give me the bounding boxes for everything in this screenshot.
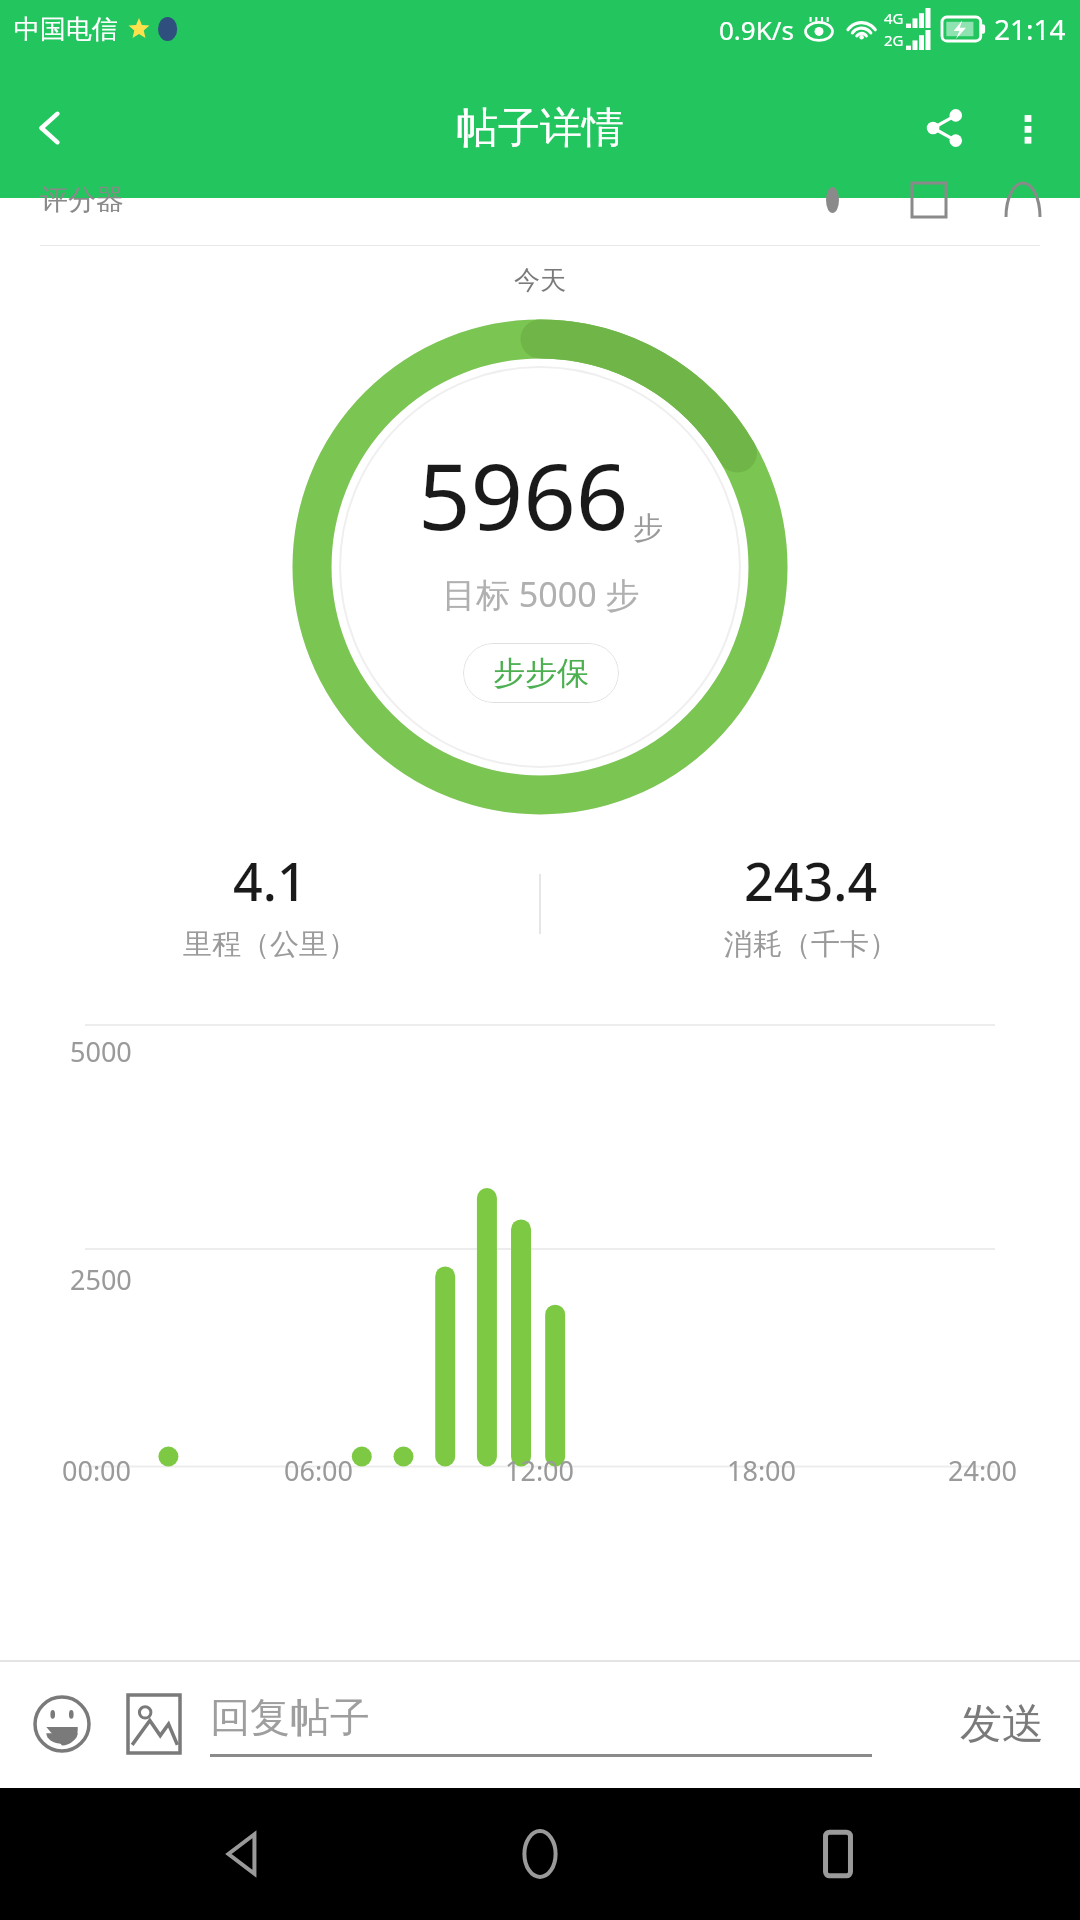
button[interactable]: Recent apps <box>783 1799 893 1909</box>
staticText: 消耗（千卡） <box>724 926 898 963</box>
staticText: 发送 <box>960 1698 1044 1751</box>
staticText: 243.4 <box>744 845 878 916</box>
button[interactable]: Home <box>485 1799 595 1909</box>
button[interactable]: Back <box>14 92 86 164</box>
staticText: 00:00 <box>62 1452 132 1489</box>
staticText: 今天 <box>0 264 1080 297</box>
button[interactable]: Back <box>188 1799 298 1909</box>
staticText: 21:14 <box>994 10 1066 48</box>
staticText: 24:00 <box>948 1452 1018 1489</box>
button[interactable]: 发送 <box>948 1684 1056 1765</box>
staticText: 5966 <box>418 432 629 557</box>
button[interactable]: Add image <box>116 1686 192 1762</box>
staticText: 4G <box>884 8 904 28</box>
staticText: 06:00 <box>284 1452 354 1489</box>
staticText: 步步保 <box>493 653 589 693</box>
staticText: 里程（公里） <box>183 926 357 963</box>
staticText: 5000 <box>70 1033 132 1070</box>
staticText: 2G <box>884 30 904 50</box>
staticText: 中国电信 <box>14 13 118 46</box>
button[interactable]: Emoji <box>24 1686 100 1762</box>
staticText: 0.9K/s <box>719 12 794 47</box>
button[interactable]: More options <box>986 86 1070 170</box>
staticText: 帖子详情 <box>456 102 624 155</box>
staticText: 步 <box>633 509 663 547</box>
staticText: 18:00 <box>727 1452 797 1489</box>
staticText: 12:00 <box>505 1452 575 1489</box>
button[interactable]: 回复帖子 <box>210 1692 370 1742</box>
button[interactable]: Share <box>902 86 986 170</box>
button[interactable]: 243.4 <box>541 845 1080 963</box>
staticText: 目标 5000 步 <box>442 571 640 617</box>
button[interactable]: 4.1 <box>0 845 539 963</box>
staticText: 评分器 <box>40 182 124 217</box>
button[interactable]: 步步保 <box>463 643 619 703</box>
staticText: 4.1 <box>233 845 307 916</box>
staticText: 2500 <box>70 1261 132 1298</box>
